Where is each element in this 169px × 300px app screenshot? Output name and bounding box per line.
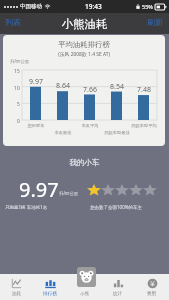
staticText: 列表 xyxy=(5,17,21,27)
button[interactable]: 油耗 xyxy=(0,274,33,300)
button[interactable]: 统计 xyxy=(101,274,135,300)
button[interactable]: Rate 2 xyxy=(101,184,115,196)
staticText: 您击败了全国100%的车主 xyxy=(90,204,142,210)
staticText: 升/百公里 xyxy=(59,190,79,196)
staticText: 费用 xyxy=(147,291,157,297)
button[interactable]: 刷新 xyxy=(141,14,169,30)
staticText: 同款车型最佳 xyxy=(101,130,133,135)
staticText: 中国移动 xyxy=(20,3,42,10)
staticText: 平均油耗排行榜 xyxy=(3,40,165,49)
staticText: 车友平均 xyxy=(74,123,106,128)
staticText: 55% xyxy=(142,3,153,10)
staticText: 油耗 xyxy=(12,291,22,297)
button[interactable]: Rate 3 xyxy=(115,184,129,196)
button[interactable]: 费用 xyxy=(135,274,169,300)
staticText: 7.48 xyxy=(133,85,155,95)
staticText: 统计 xyxy=(113,291,123,297)
staticText: 排行榜 xyxy=(43,291,57,297)
staticText: 19:43 xyxy=(85,2,102,11)
staticText: 小熊 xyxy=(80,291,89,297)
staticText: 8.54 xyxy=(106,82,128,92)
staticText: 同款车型平均 xyxy=(128,123,160,128)
staticText: 5 xyxy=(11,100,20,107)
staticText: 9.97 xyxy=(25,77,47,87)
button[interactable]: Rate 1 xyxy=(87,184,101,196)
button[interactable]: Rate 5 xyxy=(143,184,157,196)
staticText: 10 xyxy=(11,84,20,91)
staticText: 您的爱车 xyxy=(20,123,52,128)
staticText: (乐风 2008款 1.4 SE AT) xyxy=(3,51,165,58)
staticText: 7.66 xyxy=(79,85,101,95)
staticText: 升/百公里 xyxy=(10,58,30,64)
staticText: 15 xyxy=(11,67,20,74)
staticText: 刷新 xyxy=(147,17,163,27)
button[interactable]: 排行榜 xyxy=(33,274,67,300)
staticText: 小熊油耗 xyxy=(62,17,108,31)
button[interactable]: 小熊 xyxy=(77,267,96,287)
staticText: 8.64 xyxy=(52,81,74,91)
button[interactable]: Rate 4 xyxy=(129,184,143,196)
staticText: 我的小车 xyxy=(0,158,169,167)
staticText: 车友最佳 xyxy=(47,130,79,135)
button[interactable]: 列表 xyxy=(0,14,27,30)
staticText: 9.97 xyxy=(19,176,59,203)
staticText: 0 xyxy=(11,117,20,124)
staticText: 只跑赢1辆 车油耗1名 xyxy=(5,204,48,210)
